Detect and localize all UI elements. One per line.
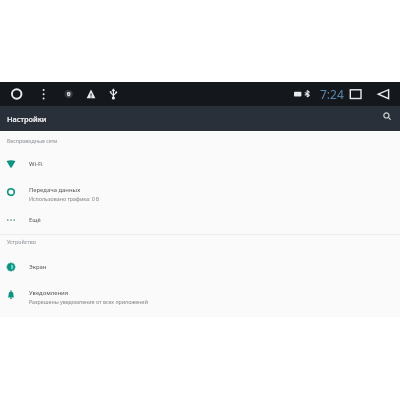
staticText: Уведомления: [29, 289, 69, 297]
staticText: Ещё: [29, 216, 41, 224]
button[interactable]: Передача данных: [0, 181, 400, 205]
staticText: Wi-Fi: [29, 160, 43, 168]
button[interactable]: Экран: [0, 255, 400, 279]
staticText: Экран: [29, 263, 47, 271]
button[interactable]: Wi-Fi: [0, 152, 400, 176]
button[interactable]: Search: [377, 107, 396, 126]
staticText: 7:24: [320, 86, 344, 102]
staticText: Передача данных: [29, 186, 81, 194]
button[interactable]: Ещё: [0, 208, 400, 232]
staticText: Разрешены уведомления от всех приложений: [29, 298, 148, 305]
staticText: Использовано трафика: 0 Б: [29, 195, 100, 202]
button[interactable]: Уведомления: [0, 284, 400, 308]
staticText: Беспроводные сети: [7, 137, 58, 144]
staticText: Устройство: [7, 238, 36, 245]
staticText: Настройки: [7, 114, 47, 124]
